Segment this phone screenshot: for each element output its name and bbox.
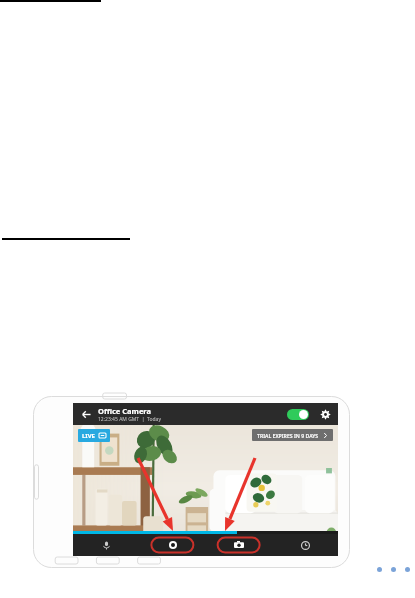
button[interactable]: Talk <box>73 534 140 556</box>
staticText: LIVE <box>82 432 95 440</box>
staticText: Office Camera <box>98 406 152 416</box>
button[interactable]: Back <box>79 407 93 421</box>
staticText: 12:23:45 AM GMT | Today <box>98 416 161 423</box>
button[interactable]: LIVE <box>78 429 110 442</box>
staticText: TRIAL EXPIRES IN 9 DAYS <box>257 432 319 439</box>
button[interactable]: Record video <box>140 534 206 556</box>
button[interactable]: TRIAL EXPIRES IN 9 DAYS <box>252 429 333 441</box>
button[interactable]: Settings <box>318 407 332 421</box>
button[interactable]: Take snapshot <box>206 534 272 556</box>
button[interactable]: History <box>272 534 338 556</box>
button[interactable]: Camera on/off <box>287 409 309 420</box>
